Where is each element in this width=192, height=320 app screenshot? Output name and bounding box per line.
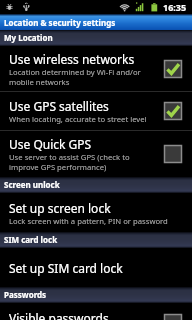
- staticText: Passwords: [4, 289, 47, 300]
- staticText: My Location: [4, 32, 53, 43]
- staticText: Set up screen lock: [9, 200, 111, 216]
- button[interactable]: Use wireless networks: [0, 46, 192, 91]
- staticText: Location determined by Wi-Fi and/or mobi…: [9, 67, 141, 87]
- staticText: Visible passwords: [9, 310, 109, 320]
- button[interactable]: Use GPS satellites: [0, 92, 192, 130]
- staticText: Lock screen with a pattern, PIN or passw…: [9, 216, 168, 226]
- staticText: Use server to assist GPS (check to impro…: [9, 152, 130, 172]
- staticText: Set up SIM card lock: [9, 260, 123, 276]
- button[interactable]: Use Quick GPS: [0, 131, 192, 177]
- staticText: Use Quick GPS: [9, 136, 92, 152]
- staticText: When locating, accurate to street level: [9, 114, 147, 124]
- button[interactable]: Visible passwords: [0, 303, 192, 320]
- button[interactable]: Set up screen lock: [0, 193, 192, 232]
- staticText: Screen unlock: [4, 179, 60, 190]
- staticText: Use GPS satellites: [9, 98, 109, 114]
- staticText: Location & security settings: [4, 17, 116, 28]
- button[interactable]: Set up SIM card lock: [0, 248, 192, 287]
- staticText: SIM card lock: [4, 234, 58, 245]
- staticText: 16:35: [163, 1, 187, 13]
- staticText: Use wireless networks: [9, 51, 135, 67]
